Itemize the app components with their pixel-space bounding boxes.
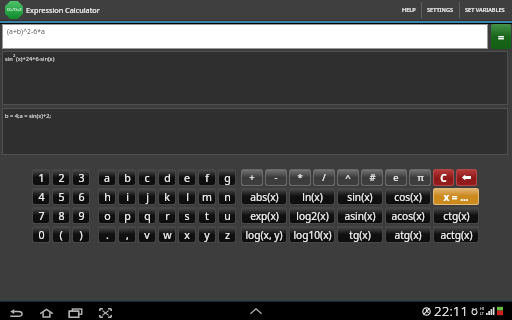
staticText: g bbox=[224, 171, 231, 185]
button[interactable]: (a+b)^2-6*a bbox=[3, 25, 487, 48]
button[interactable]: ( bbox=[53, 227, 69, 242]
button[interactable]: . bbox=[99, 227, 115, 242]
staticText: cos(x) bbox=[394, 190, 422, 204]
button[interactable]: Show navigation bbox=[249, 306, 263, 315]
button[interactable]: m bbox=[199, 189, 215, 204]
button[interactable]: 6 bbox=[73, 189, 89, 204]
staticText: SET VARIABLES bbox=[465, 6, 505, 14]
staticText: m bbox=[202, 190, 212, 204]
button[interactable]: Back bbox=[9, 305, 24, 320]
button[interactable]: sin bbox=[2, 51, 508, 105]
button[interactable]: , bbox=[119, 227, 135, 242]
button[interactable]: # bbox=[362, 170, 382, 185]
staticText: atg(x) bbox=[394, 228, 422, 242]
button[interactable]: sin(x) bbox=[338, 189, 382, 204]
button[interactable]: x bbox=[179, 227, 195, 242]
staticText: t bbox=[205, 209, 209, 223]
button[interactable]: Home bbox=[39, 305, 54, 320]
staticText: - bbox=[274, 171, 278, 184]
button[interactable]: n bbox=[219, 189, 235, 204]
button[interactable]: Recent apps bbox=[68, 305, 83, 320]
staticText: log(x, y) bbox=[245, 228, 283, 242]
button[interactable]: acos(x) bbox=[386, 208, 430, 223]
button[interactable]: p bbox=[119, 208, 135, 223]
staticText: ( bbox=[59, 228, 63, 242]
button[interactable]: tg(x) bbox=[338, 227, 382, 242]
button[interactable]: c bbox=[139, 170, 155, 185]
button[interactable]: k bbox=[159, 189, 175, 204]
button[interactable]: log2(x) bbox=[290, 208, 334, 223]
button[interactable]: SETTINGS bbox=[422, 2, 459, 18]
button[interactable]: 4 bbox=[33, 189, 49, 204]
button[interactable]: log(x, y) bbox=[242, 227, 286, 242]
button[interactable]: ctg(x) bbox=[434, 208, 478, 223]
button[interactable]: 3 bbox=[73, 170, 89, 185]
button[interactable]: asin(x) bbox=[338, 208, 382, 223]
button[interactable]: HELP bbox=[397, 2, 421, 18]
button[interactable]: cos(x) bbox=[386, 189, 430, 204]
staticText: o bbox=[104, 209, 111, 223]
button[interactable]: b bbox=[119, 170, 135, 185]
staticText: x = ... bbox=[443, 190, 469, 204]
button[interactable]: l bbox=[179, 189, 195, 204]
button[interactable]: 7 bbox=[33, 208, 49, 223]
button[interactable]: C bbox=[434, 170, 453, 185]
staticText: actg(x) bbox=[440, 228, 473, 242]
button[interactable]: v bbox=[139, 227, 155, 242]
staticText: 1 bbox=[38, 171, 45, 185]
button[interactable]: r bbox=[159, 208, 175, 223]
button[interactable]: / bbox=[314, 170, 334, 185]
button[interactable]: Status bbox=[422, 302, 503, 320]
button[interactable]: i bbox=[119, 189, 135, 204]
button[interactable]: atg(x) bbox=[386, 227, 430, 242]
staticText: 2 bbox=[58, 171, 65, 185]
button[interactable]: x = ... bbox=[434, 189, 478, 204]
button[interactable]: q bbox=[139, 208, 155, 223]
button[interactable]: * bbox=[290, 170, 310, 185]
staticText: 2 bbox=[13, 53, 16, 59]
staticText: k bbox=[164, 190, 170, 204]
button[interactable]: ) bbox=[73, 227, 89, 242]
button[interactable]: 2 bbox=[53, 170, 69, 185]
staticText: C bbox=[440, 171, 447, 185]
button[interactable]: 0 bbox=[33, 227, 49, 242]
button[interactable]: y bbox=[199, 227, 215, 242]
button[interactable]: actg(x) bbox=[434, 227, 478, 242]
button[interactable]: o bbox=[99, 208, 115, 223]
button[interactable]: 1 bbox=[33, 170, 49, 185]
button[interactable]: u bbox=[219, 208, 235, 223]
button[interactable]: - bbox=[266, 170, 286, 185]
button[interactable]: b = 4;a = sin(x)+2; bbox=[2, 108, 508, 155]
button[interactable]: e bbox=[386, 170, 406, 185]
button[interactable]: j bbox=[139, 189, 155, 204]
button[interactable]: 8 bbox=[53, 208, 69, 223]
button[interactable]: π bbox=[410, 170, 430, 185]
button[interactable]: s bbox=[179, 208, 195, 223]
button[interactable]: e bbox=[179, 170, 195, 185]
button[interactable]: log10(x) bbox=[290, 227, 334, 242]
staticText: n bbox=[224, 190, 231, 204]
button[interactable]: a bbox=[99, 170, 115, 185]
staticText: SETTINGS bbox=[427, 6, 454, 14]
button[interactable]: ^ bbox=[338, 170, 358, 185]
button[interactable]: + bbox=[242, 170, 262, 185]
staticText: + bbox=[249, 171, 255, 184]
button[interactable]: d bbox=[159, 170, 175, 185]
button[interactable]: Evaluate bbox=[491, 24, 511, 49]
button[interactable]: abs(x) bbox=[242, 189, 286, 204]
button[interactable]: z bbox=[219, 227, 235, 242]
button[interactable]: 5 bbox=[53, 189, 69, 204]
button[interactable]: Backspace bbox=[457, 170, 476, 185]
staticText: a bbox=[104, 171, 110, 185]
button[interactable]: ln(x) bbox=[290, 189, 334, 204]
button[interactable]: SET VARIABLES bbox=[460, 2, 510, 18]
button[interactable]: g bbox=[219, 170, 235, 185]
button[interactable]: h bbox=[99, 189, 115, 204]
button[interactable]: t bbox=[199, 208, 215, 223]
button[interactable]: 9 bbox=[73, 208, 89, 223]
button[interactable]: exp(x) bbox=[242, 208, 286, 223]
staticText: * bbox=[297, 171, 303, 184]
button[interactable]: f bbox=[199, 170, 215, 185]
button[interactable]: Screenshot bbox=[98, 305, 113, 320]
button[interactable]: w bbox=[159, 227, 175, 242]
